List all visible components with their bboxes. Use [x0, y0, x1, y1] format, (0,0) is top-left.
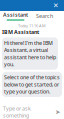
- button[interactable]: Close: [52, 1, 60, 9]
- staticText: Today 11:16 AM: [18, 23, 46, 28]
- button[interactable]: Assistant: [3, 11, 28, 21]
- staticText: Select one of the topics below to get st…: [4, 74, 60, 95]
- staticText: ✕: [53, 2, 59, 9]
- staticText: Type or ask something: [3, 105, 31, 119]
- staticText: Assistant: [3, 11, 28, 18]
- staticText: Search: [36, 12, 53, 20]
- staticText: Hi there! I'm the IBM Assistant, a virtu…: [4, 39, 56, 68]
- staticText: ➤: [55, 108, 61, 116]
- button[interactable]: Search: [36, 12, 53, 20]
- staticText: IBM Assistant: [2, 28, 39, 35]
- button[interactable]: Send: [55, 108, 61, 116]
